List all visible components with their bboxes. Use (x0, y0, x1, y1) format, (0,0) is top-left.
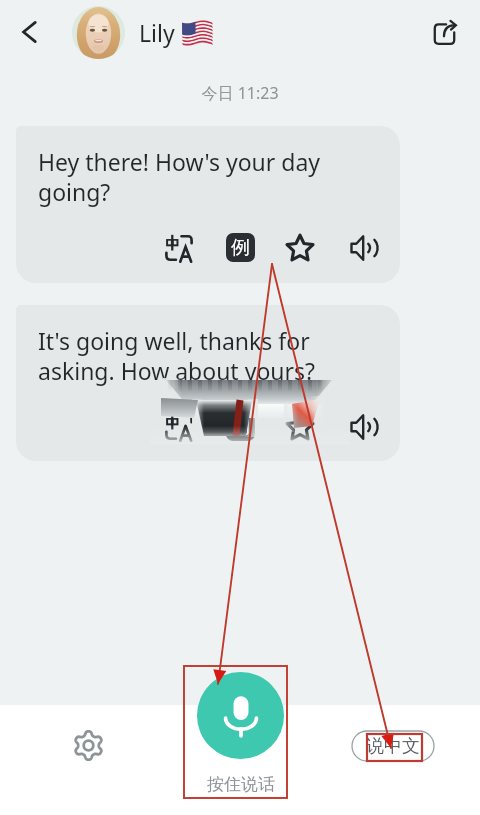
staticText: 例 (231, 415, 250, 439)
staticText: Lily (139, 17, 175, 48)
staticText: 今日 11:23 (0, 82, 480, 104)
button[interactable]: Play audio (347, 409, 382, 444)
button[interactable]: Play audio (347, 230, 382, 265)
button[interactable]: Favorite (282, 409, 317, 444)
button[interactable]: 按住说话 (197, 672, 284, 795)
button[interactable]: Translate (161, 230, 196, 265)
button[interactable]: Hey there! How's your day going? (16, 126, 400, 283)
button[interactable]: Translate (161, 409, 196, 444)
button[interactable]: Example (226, 412, 255, 441)
staticText: It's going well, thanks for asking. How … (38, 325, 340, 386)
button[interactable]: Back (6, 8, 54, 56)
staticText: 例 (231, 236, 250, 260)
staticText: Hey there! How's your day going? (38, 146, 340, 207)
staticText: 按住说话 (207, 774, 275, 795)
button[interactable]: Example (226, 233, 255, 262)
button[interactable]: Settings (65, 722, 111, 768)
button[interactable]: 说中文 (352, 731, 434, 761)
button[interactable]: Share (420, 8, 468, 56)
button[interactable]: It's going well, thanks for asking. How … (16, 305, 400, 461)
staticText: 说中文 (366, 735, 420, 758)
button[interactable]: Favorite (282, 230, 317, 265)
